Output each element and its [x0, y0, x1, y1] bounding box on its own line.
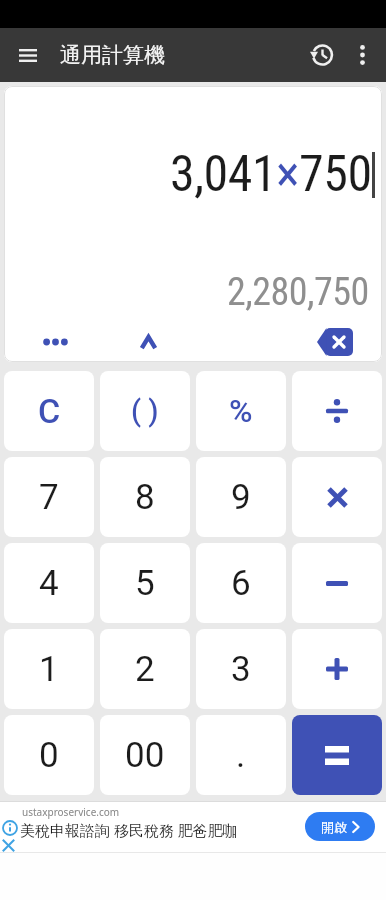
button[interactable]	[360, 45, 365, 65]
staticText: 00	[125, 735, 165, 776]
button[interactable]: 9	[196, 457, 286, 537]
button[interactable]: 0	[4, 715, 94, 795]
staticText: 9	[231, 477, 251, 518]
staticText: C	[38, 391, 61, 431]
staticText: 通用計算機	[60, 42, 165, 68]
button[interactable]: 4	[4, 543, 94, 623]
staticText: 5	[135, 563, 155, 604]
button[interactable]	[98, 328, 192, 356]
button[interactable]	[292, 715, 382, 795]
button[interactable]: .	[196, 715, 286, 795]
button[interactable]: 1	[4, 629, 94, 709]
staticText: 4	[39, 563, 59, 604]
button[interactable]	[19, 49, 37, 62]
staticText: 1	[39, 649, 59, 690]
button[interactable]	[292, 457, 382, 537]
button[interactable]	[4, 328, 98, 356]
staticText: 3,041×750	[170, 145, 372, 204]
button[interactable]: 開啟	[305, 812, 375, 841]
button[interactable]: 5	[100, 543, 190, 623]
button[interactable]: 2	[100, 629, 190, 709]
staticText: ustaxproservice.com	[22, 805, 120, 819]
button[interactable]	[310, 43, 334, 67]
button[interactable]: 6	[196, 543, 286, 623]
staticText: 3	[231, 649, 251, 690]
button[interactable]: ( )	[100, 371, 190, 451]
staticText: 6	[231, 563, 251, 604]
staticText: 開啟	[321, 819, 347, 835]
staticText: 2	[135, 649, 155, 690]
staticText: 2,280,750	[227, 270, 369, 315]
staticText: %	[229, 392, 253, 430]
staticText: 7	[39, 477, 59, 518]
button[interactable]	[287, 328, 382, 356]
button[interactable]	[292, 371, 382, 451]
button[interactable]: 00	[100, 715, 190, 795]
button[interactable]	[292, 543, 382, 623]
staticText: ( )	[131, 394, 159, 428]
button[interactable]: 8	[100, 457, 190, 537]
staticText: .	[236, 735, 246, 776]
button[interactable]: 7	[4, 457, 94, 537]
staticText: 8	[135, 477, 155, 518]
button[interactable]: 3	[196, 629, 286, 709]
button[interactable]	[2, 839, 15, 852]
staticText: 0	[39, 735, 59, 776]
button[interactable]	[292, 629, 382, 709]
button[interactable]: %	[196, 371, 286, 451]
staticText: 美稅申報諮詢 移民稅務 肥爸肥咖	[20, 820, 238, 840]
button[interactable]: C	[4, 371, 94, 451]
